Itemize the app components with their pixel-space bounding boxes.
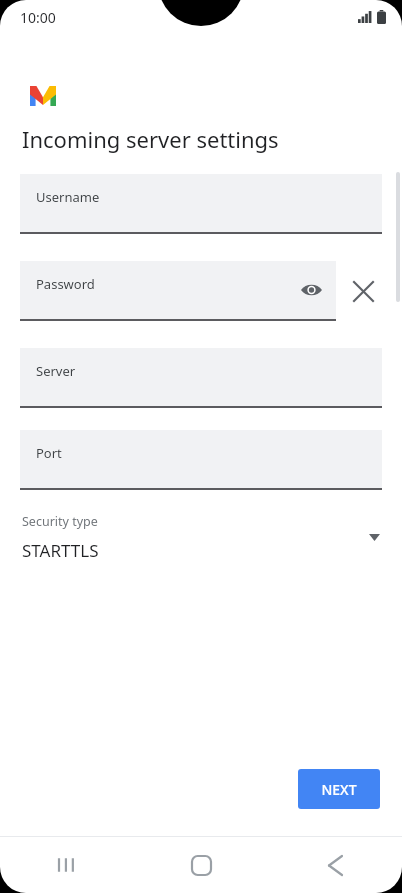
staticText: Username (36, 188, 100, 206)
button[interactable]: Recents (0, 837, 134, 893)
staticText: STARTTLS (22, 539, 99, 562)
staticText: Server (36, 362, 76, 380)
staticText: Incoming server settings (22, 124, 279, 154)
staticText: Password (36, 275, 95, 293)
staticText: Security type (22, 513, 98, 530)
button[interactable]: Password (20, 261, 336, 321)
button[interactable]: Port (20, 430, 382, 490)
staticText: 10:00 (20, 8, 56, 27)
staticText: NEXT (321, 780, 357, 799)
button[interactable]: NEXT (298, 769, 380, 809)
button[interactable]: Security type (0, 513, 402, 562)
button[interactable]: Clear password (344, 272, 382, 310)
button[interactable]: Show password (298, 277, 324, 303)
button[interactable]: Home (134, 837, 268, 893)
button[interactable]: Username (20, 174, 382, 234)
staticText: Port (36, 444, 62, 462)
button[interactable]: Back (268, 837, 402, 893)
button[interactable]: Server (20, 348, 382, 408)
